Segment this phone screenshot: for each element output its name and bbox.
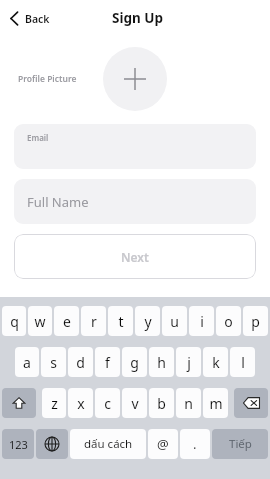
button[interactable]: x — [68, 388, 93, 418]
staticText: d — [76, 353, 85, 372]
button[interactable]: v — [122, 388, 147, 418]
staticText: j — [187, 353, 191, 372]
button[interactable]: f — [95, 347, 120, 377]
staticText: m — [209, 394, 223, 413]
button[interactable]: s — [41, 347, 66, 377]
staticText: s — [50, 353, 57, 372]
staticText: Profile Picture — [18, 73, 77, 85]
staticText: l — [241, 353, 245, 372]
staticText: q — [10, 312, 19, 331]
button[interactable]: o — [216, 306, 241, 336]
staticText: Sign Up — [112, 9, 164, 27]
button[interactable]: l — [230, 347, 255, 377]
staticText: 123 — [9, 437, 28, 452]
staticText: t — [118, 312, 124, 331]
button[interactable]: Shift — [2, 388, 36, 418]
staticText: v — [131, 394, 139, 413]
button[interactable]: a — [15, 347, 39, 377]
staticText: h — [157, 353, 166, 372]
button[interactable]: Back — [6, 7, 53, 30]
button[interactable]: p — [243, 306, 268, 336]
staticText: z — [51, 394, 58, 413]
staticText: r — [91, 312, 97, 331]
staticText: i — [200, 312, 204, 331]
staticText: e — [63, 312, 71, 331]
button[interactable]: Change keyboard language — [36, 429, 68, 459]
button[interactable]: j — [176, 347, 201, 377]
staticText: Tiếp — [229, 436, 252, 452]
button[interactable]: Tiếp — [212, 429, 268, 459]
button[interactable]: Email — [14, 124, 256, 169]
button[interactable]: q — [2, 306, 26, 336]
button[interactable]: b — [149, 388, 174, 418]
staticText: u — [170, 312, 179, 331]
staticText: w — [34, 312, 46, 331]
button[interactable]: i — [189, 306, 214, 336]
staticText: Full Name — [27, 193, 89, 211]
button[interactable]: @ — [148, 429, 178, 459]
staticText: p — [251, 312, 260, 331]
button[interactable]: z — [42, 388, 66, 418]
staticText: @ — [157, 435, 169, 453]
button[interactable]: c — [95, 388, 120, 418]
button[interactable]: r — [81, 306, 106, 336]
button[interactable]: Add profile picture — [103, 47, 167, 111]
button[interactable]: . — [180, 429, 210, 459]
staticText: f — [105, 353, 110, 372]
staticText: . — [193, 435, 197, 453]
staticText: b — [157, 394, 166, 413]
button[interactable]: 123 — [2, 429, 34, 459]
staticText: n — [184, 394, 193, 413]
button[interactable]: u — [162, 306, 187, 336]
staticText: Email — [27, 132, 49, 143]
staticText: k — [212, 353, 220, 372]
staticText: Next — [121, 249, 149, 265]
button[interactable]: dấu cách — [70, 429, 146, 459]
staticText: o — [224, 312, 233, 331]
button[interactable]: y — [135, 306, 160, 336]
button[interactable]: w — [28, 306, 52, 336]
staticText: c — [104, 394, 111, 413]
button[interactable]: g — [122, 347, 147, 377]
button[interactable]: Next — [14, 234, 256, 279]
staticText: x — [77, 394, 85, 413]
button[interactable]: n — [176, 388, 201, 418]
staticText: dấu cách — [84, 436, 133, 452]
button[interactable]: h — [149, 347, 174, 377]
staticText: y — [144, 312, 152, 331]
button[interactable]: d — [68, 347, 93, 377]
button[interactable]: t — [108, 306, 133, 336]
button[interactable]: k — [203, 347, 228, 377]
staticText: a — [23, 353, 31, 372]
staticText: g — [130, 353, 139, 372]
button[interactable]: Full Name — [14, 179, 256, 224]
button[interactable]: e — [54, 306, 79, 336]
staticText: Back — [25, 12, 50, 26]
button[interactable]: m — [203, 388, 228, 418]
button[interactable]: Backspace — [234, 388, 268, 418]
